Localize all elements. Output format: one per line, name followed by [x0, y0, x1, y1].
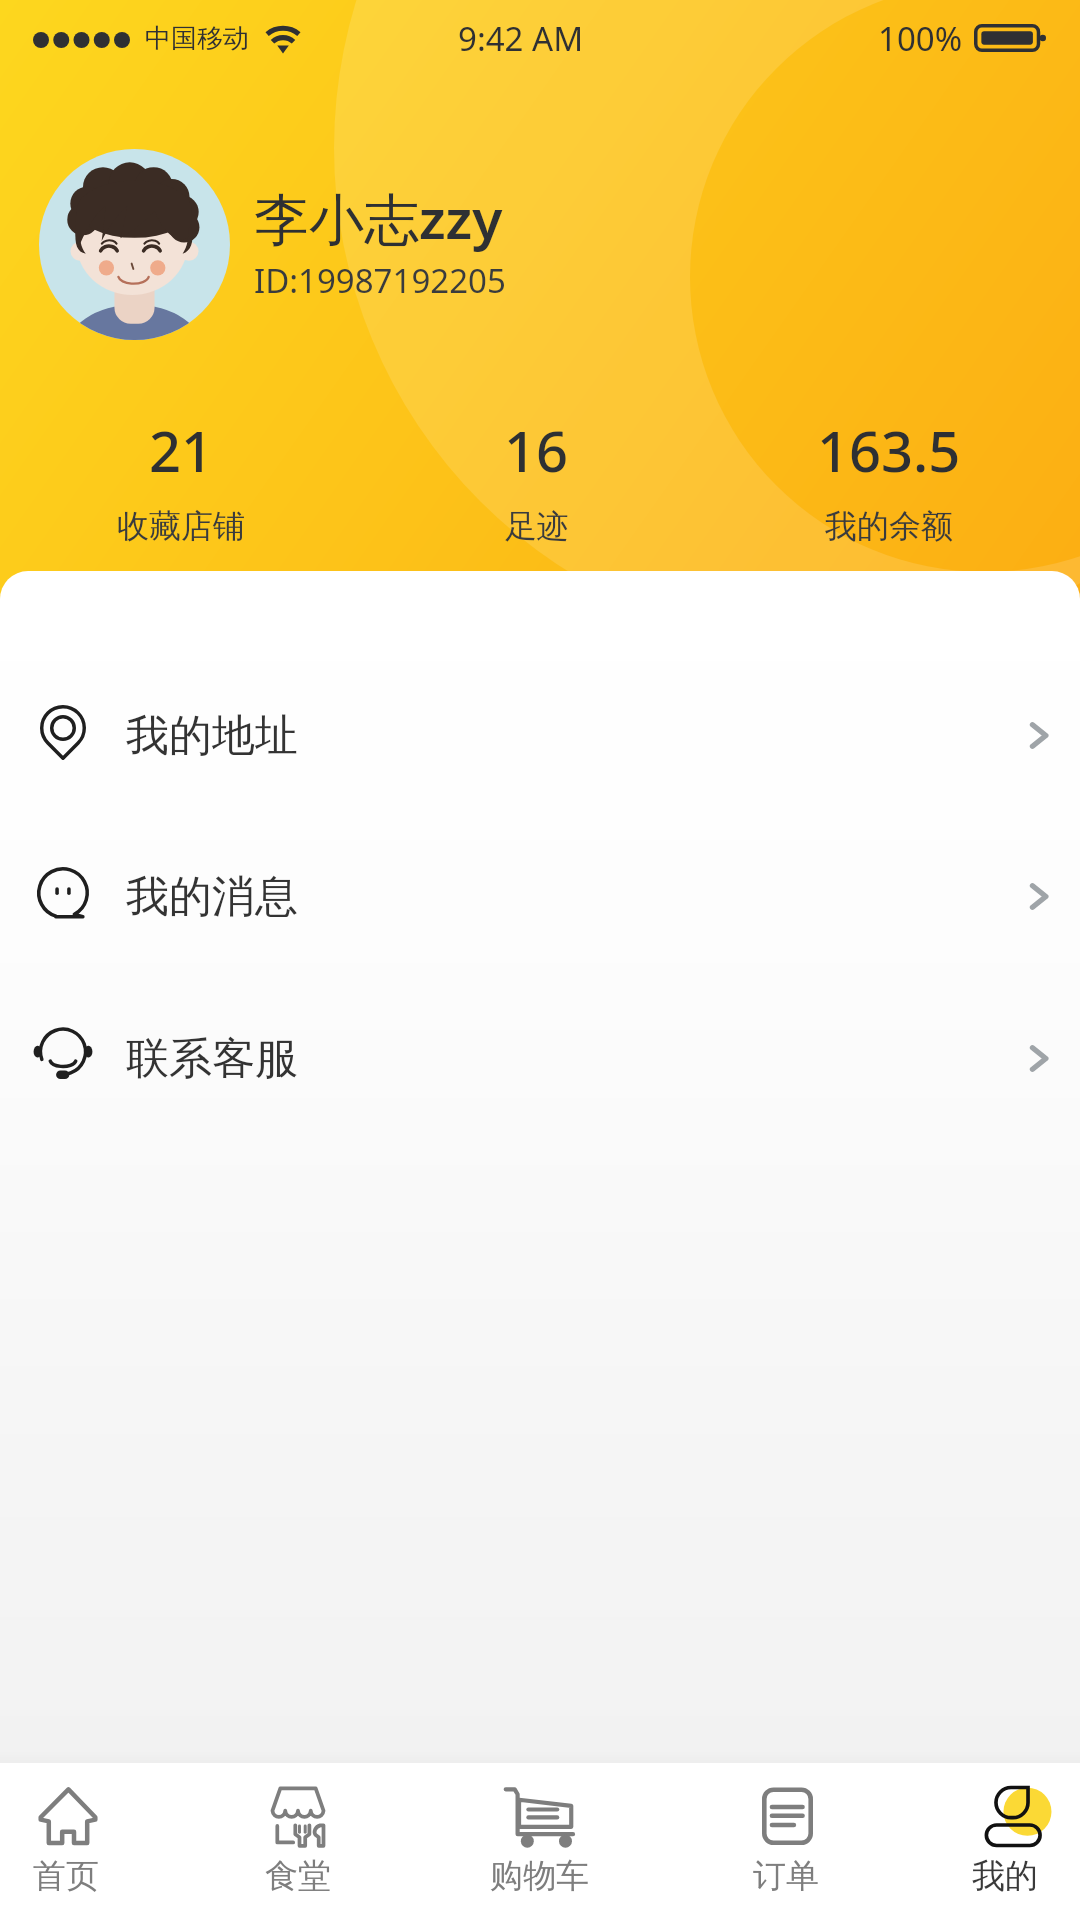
button[interactable]: 订单 — [678, 1763, 894, 1920]
staticText: 中国移动 — [145, 22, 249, 55]
staticText: ID:19987192205 — [254, 258, 506, 303]
staticText: 购物车 — [490, 1855, 589, 1897]
staticText: 足迹 — [505, 506, 569, 546]
staticText: 收藏店铺 — [117, 506, 245, 546]
button[interactable]: 购物车 — [431, 1763, 647, 1920]
button[interactable]: Mine, selected — [897, 1763, 1080, 1920]
staticText: 订单 — [753, 1855, 819, 1897]
staticText: 我的消息 — [126, 870, 298, 924]
button[interactable]: 21 — [71, 412, 291, 552]
button[interactable]: 联系客服 — [0, 975, 1080, 1135]
button[interactable]: 163.5 — [779, 412, 999, 552]
button[interactable]: Profile picture — [39, 149, 230, 340]
button[interactable]: 食堂 — [190, 1763, 406, 1920]
staticText: 16 — [504, 412, 569, 488]
button[interactable]: 16 — [426, 412, 646, 552]
staticText: 9:42 AM — [458, 16, 584, 61]
staticText: 李小志zzy — [254, 180, 503, 255]
other: Mine, selected — [984, 1786, 1054, 1847]
staticText: 食堂 — [265, 1855, 331, 1897]
button[interactable]: 我的地址 — [0, 652, 1080, 812]
staticText: 首页 — [33, 1855, 99, 1897]
staticText: 联系客服 — [126, 1032, 298, 1086]
staticText: 我的 — [972, 1855, 1038, 1897]
staticText: 我的地址 — [126, 709, 298, 763]
staticText: 我的余额 — [825, 506, 953, 546]
staticText: 100% — [878, 16, 963, 61]
button[interactable]: 首页 — [0, 1763, 174, 1920]
button[interactable]: 我的消息 — [0, 813, 1080, 973]
staticText: 163.5 — [817, 412, 961, 488]
staticText: 21 — [149, 412, 214, 488]
